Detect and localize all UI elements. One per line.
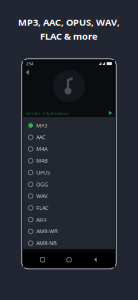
staticText: 2:54	[26, 61, 33, 66]
staticText: AMR-WB	[36, 228, 57, 235]
staticText: MP3	[36, 122, 47, 129]
staticText: M4A	[36, 145, 47, 153]
staticText: WAV	[36, 193, 47, 200]
staticText: FLAC	[36, 204, 48, 211]
button[interactable]: M4A	[28, 143, 115, 155]
staticText: OGG	[36, 181, 48, 188]
staticText: M4B	[36, 157, 47, 164]
staticText: AMR-NB	[36, 240, 56, 247]
button[interactable]: Back	[88, 253, 102, 267]
button[interactable]: WAV	[28, 190, 115, 202]
button[interactable]: AAC	[28, 131, 115, 143]
staticText: MP3, AAC, OPUS, WAV,	[18, 16, 120, 28]
button[interactable]: OGG	[28, 178, 115, 190]
button[interactable]: AMR-NB	[28, 237, 115, 249]
button[interactable]: FLAC	[28, 202, 115, 214]
button[interactable]: AIFF	[28, 214, 115, 225]
staticText: Sara Ax - City Ambience	[26, 110, 69, 116]
staticText: AAC	[36, 134, 45, 141]
button[interactable]: MP3	[28, 120, 115, 131]
button[interactable]: Back	[23, 67, 30, 75]
staticText: AIFF	[36, 216, 47, 223]
button[interactable]: AMR-WB	[28, 225, 115, 237]
button[interactable]: Recents	[35, 253, 49, 267]
button[interactable]: OPUS	[28, 167, 115, 178]
button[interactable]: Home	[62, 253, 76, 267]
staticText: FLAC & more	[40, 30, 98, 42]
staticText: OPUS	[36, 169, 50, 176]
button[interactable]: M4B	[28, 155, 115, 167]
